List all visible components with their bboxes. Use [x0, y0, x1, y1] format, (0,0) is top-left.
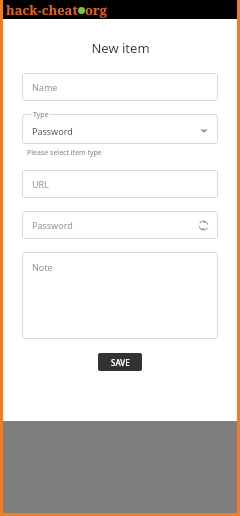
button[interactable]: Name: [22, 73, 218, 101]
staticText: Note: [32, 261, 53, 273]
button[interactable]: Type: [22, 114, 218, 144]
other: Open type dropdown: [199, 126, 209, 136]
staticText: Type: [33, 110, 49, 120]
button[interactable]: Note: [22, 252, 218, 339]
staticText: Password: [32, 219, 73, 231]
button[interactable]: URL: [22, 170, 218, 198]
staticText: New item: [91, 39, 150, 57]
button[interactable]: SAVE: [98, 353, 142, 371]
staticText: hack-cheat: [6, 1, 78, 19]
staticText: Please select item type: [27, 148, 102, 158]
staticText: Password: [32, 125, 73, 137]
staticText: org: [85, 1, 108, 19]
staticText: SAVE: [111, 357, 130, 368]
button[interactable]: Password: [22, 211, 218, 239]
button[interactable]: Generate password: [196, 218, 210, 232]
staticText: URL: [32, 178, 49, 190]
staticText: Name: [32, 81, 58, 93]
